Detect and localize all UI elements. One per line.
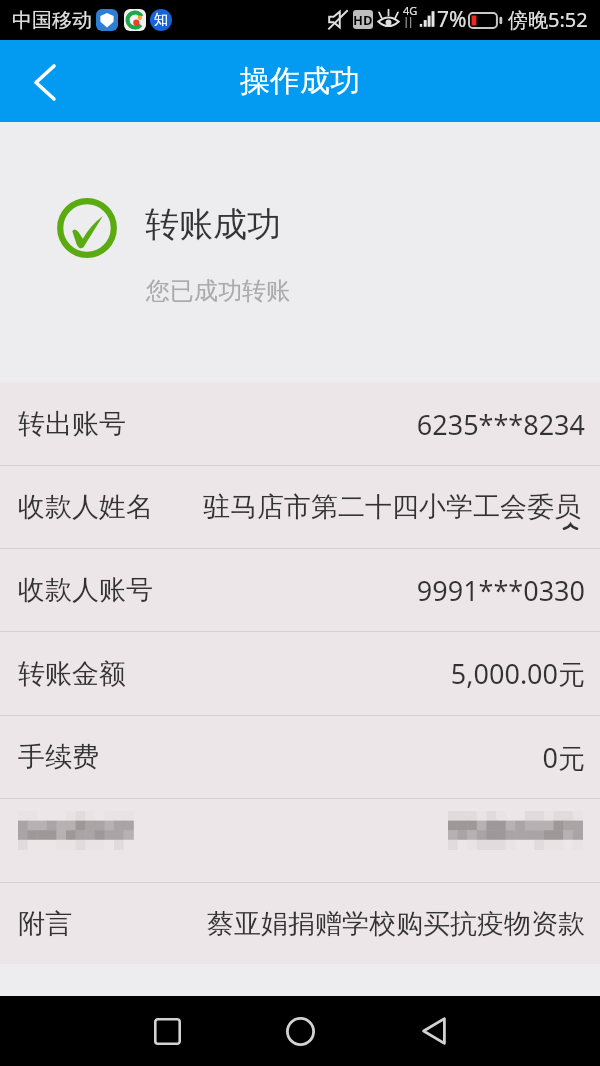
button[interactable]: Home: [270, 996, 330, 1066]
staticText: 您已成功转账: [146, 276, 290, 306]
staticText: 傍晚5:52: [508, 6, 588, 33]
staticText: 操作成功: [240, 62, 360, 100]
staticText: 蔡亚娟捐赠学校购买抗疫物资款: [207, 907, 585, 941]
staticText: 知: [154, 11, 168, 29]
staticText: 驻马店市第二十四小学工会委员: [203, 490, 581, 524]
button[interactable]: Recent apps: [137, 996, 197, 1066]
button[interactable]: 附言: [0, 883, 600, 964]
staticText: 4G: [403, 3, 418, 18]
button[interactable]: 转出账号: [0, 383, 600, 465]
staticText: 9991***0330: [416, 572, 585, 609]
button[interactable]: 收款人账号: [0, 549, 600, 631]
staticText: 6235***8234: [416, 406, 585, 443]
staticText: 5,000.00元: [450, 655, 585, 692]
button[interactable]: Back: [404, 996, 464, 1066]
staticText: 手续费: [18, 740, 99, 774]
staticText: HD: [353, 11, 373, 29]
button[interactable]: [0, 799, 600, 882]
staticText: 转出账号: [18, 407, 126, 441]
staticText: 收款人账号: [18, 573, 153, 607]
button[interactable]: 收款人姓名: [0, 466, 600, 548]
staticText: 收款人姓名: [18, 490, 153, 524]
staticText: 转账金额: [18, 657, 126, 691]
button[interactable]: 手续费: [0, 716, 600, 798]
staticText: 0元: [542, 739, 585, 776]
staticText: 附言: [18, 907, 72, 941]
staticText: 7%: [437, 5, 467, 34]
staticText: 中国移动: [12, 8, 92, 33]
staticText: 转账成功: [145, 203, 281, 246]
button[interactable]: Back: [0, 40, 88, 122]
button[interactable]: 转账金额: [0, 632, 600, 715]
